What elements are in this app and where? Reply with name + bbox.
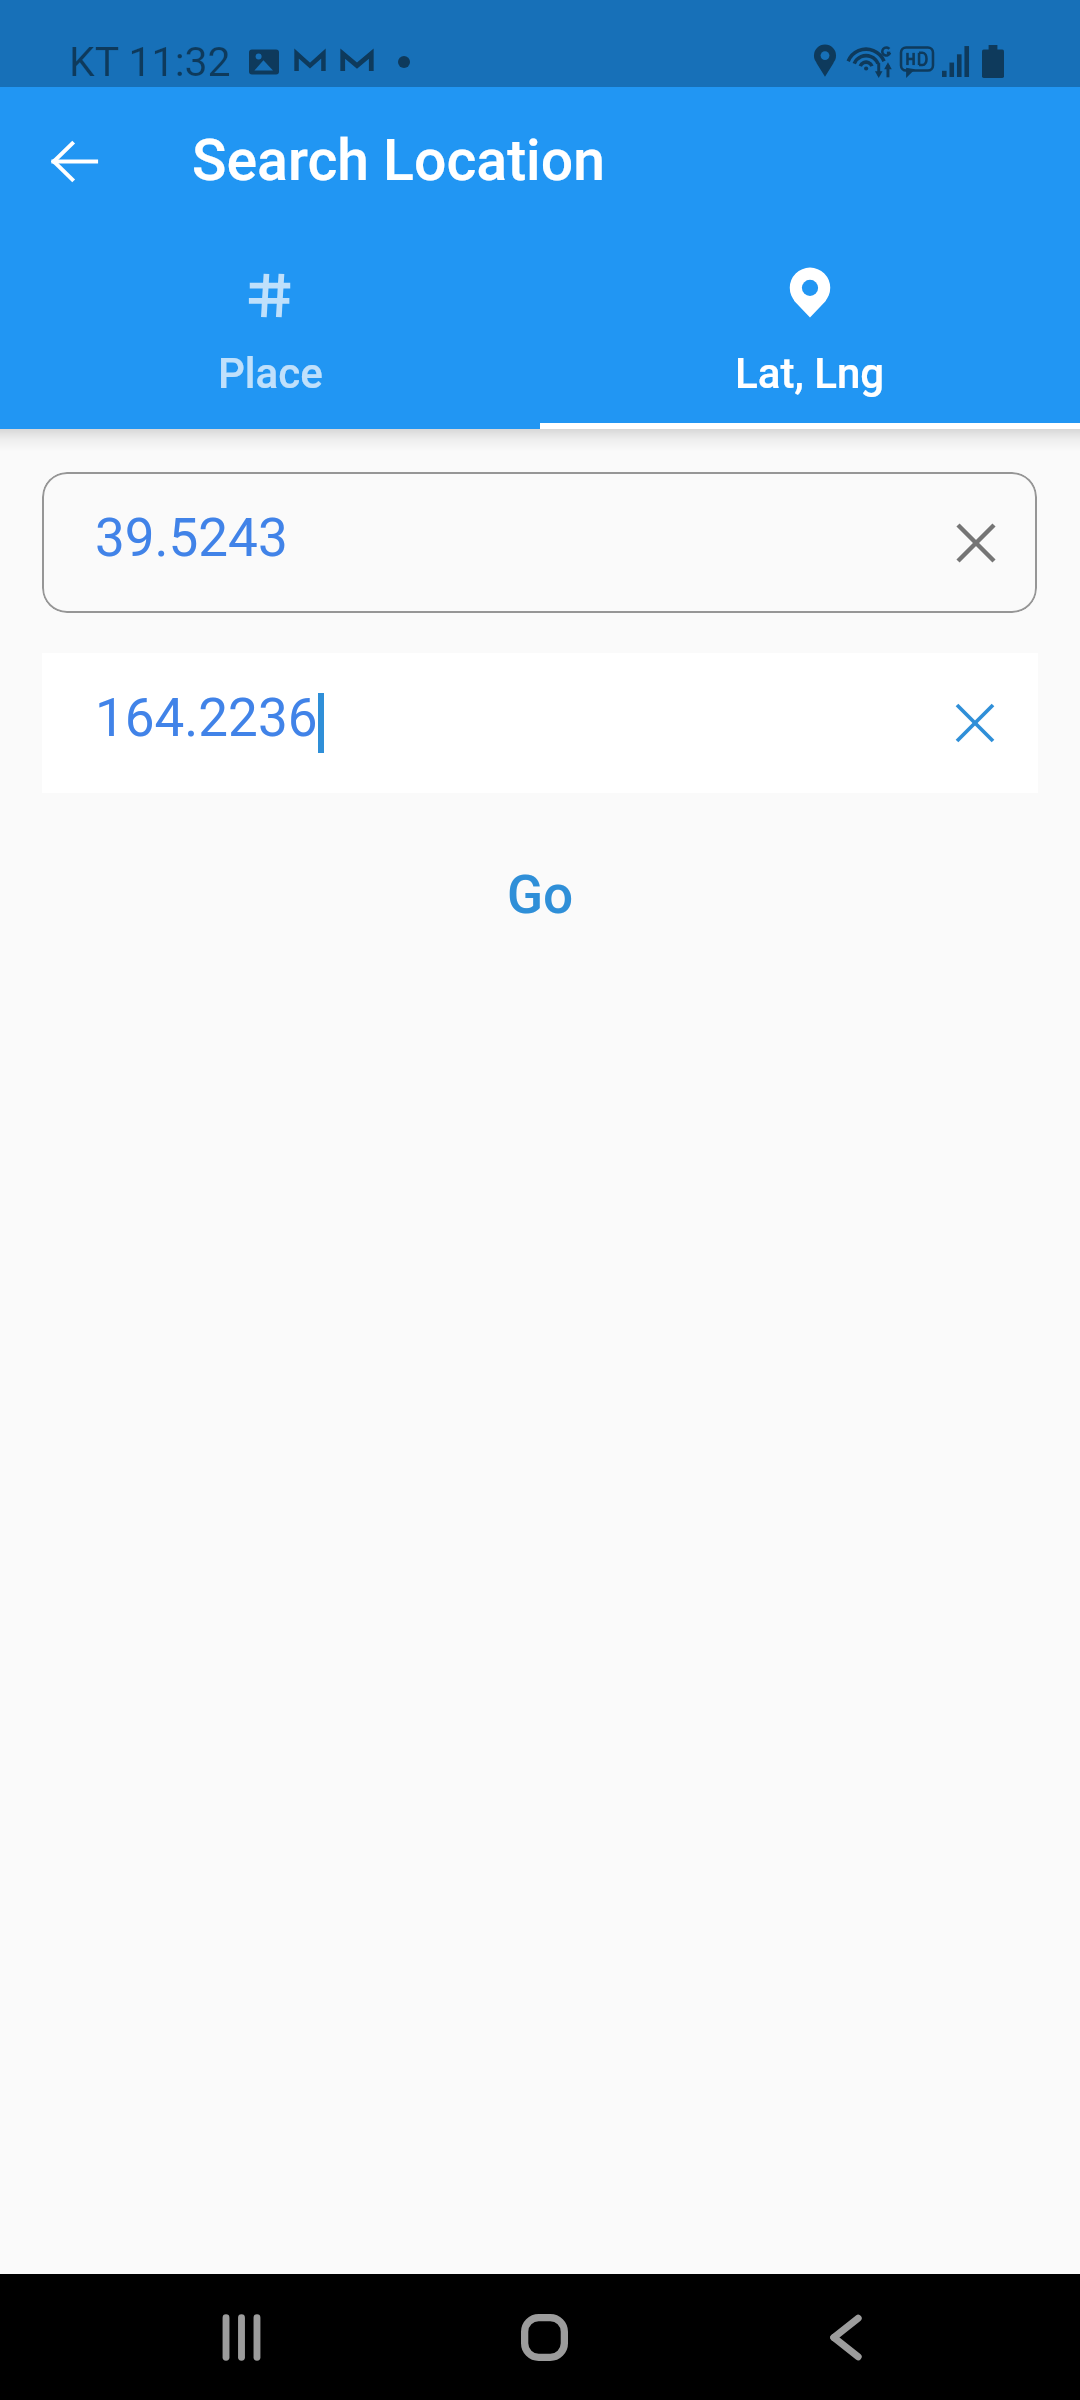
button[interactable]: 39.5243 <box>42 472 1037 613</box>
staticText: 39.5243 <box>95 507 288 569</box>
button[interactable]: Back <box>756 2274 936 2400</box>
button[interactable]: 164.2236 <box>42 653 1038 793</box>
button[interactable]: Home <box>454 2274 634 2400</box>
staticText: Lat, Lng <box>735 349 885 398</box>
button[interactable]: Lat, Lng <box>540 241 1080 429</box>
staticText: 164.2236 <box>95 687 318 749</box>
staticText: Go <box>507 864 574 926</box>
button[interactable]: Clear longitude <box>929 677 1021 769</box>
staticText: KT 11:32 <box>69 38 231 86</box>
button[interactable]: Recent apps <box>151 2274 331 2400</box>
staticText: Search Location <box>192 127 605 194</box>
staticText: Place <box>218 349 323 398</box>
button[interactable]: Clear latitude <box>930 497 1022 589</box>
button[interactable]: Place <box>0 241 540 429</box>
button[interactable]: Go <box>467 850 614 940</box>
button[interactable]: Back <box>18 108 130 220</box>
